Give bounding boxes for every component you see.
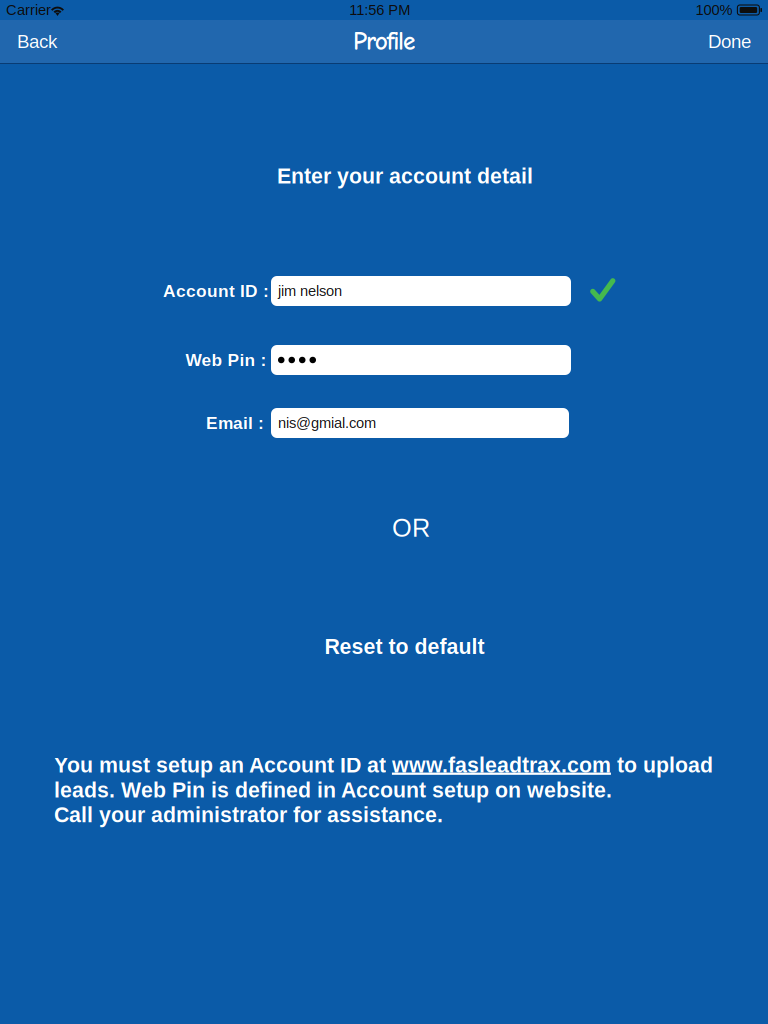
staticText: Web Pin : xyxy=(185,350,266,370)
staticText: Profile xyxy=(353,27,415,56)
button[interactable] xyxy=(271,345,571,375)
staticText: jim nelson xyxy=(278,283,342,299)
button[interactable]: Done xyxy=(694,20,768,63)
button[interactable]: Back xyxy=(0,20,71,63)
staticText: 100% xyxy=(695,2,732,18)
staticText: Reset to default xyxy=(324,635,484,658)
button[interactable]: www.fasleadtrax.com xyxy=(392,753,611,777)
staticText: 11:56 PM xyxy=(349,2,410,18)
staticText: Email : xyxy=(206,413,264,433)
staticText: Account ID : xyxy=(163,281,269,301)
staticText: Carrier xyxy=(6,2,51,18)
button[interactable]: jim nelson xyxy=(271,276,571,306)
button[interactable]: nis@gmial.com xyxy=(271,408,569,438)
staticText: You must setup an Account ID at xyxy=(54,753,392,777)
staticText: Enter your account detail xyxy=(277,164,533,188)
button[interactable]: Reset to default xyxy=(308,626,500,667)
staticText: Call your administrator for assistance. xyxy=(54,803,443,827)
staticText: to upload xyxy=(611,753,713,777)
staticText: OR xyxy=(392,514,430,542)
staticText: nis@gmial.com xyxy=(278,415,376,431)
staticText: Back xyxy=(17,31,57,52)
staticText: www.fasleadtrax.com xyxy=(392,753,611,777)
staticText: leads. Web Pin is defined in Account set… xyxy=(54,778,612,802)
staticText: Done xyxy=(708,31,751,52)
